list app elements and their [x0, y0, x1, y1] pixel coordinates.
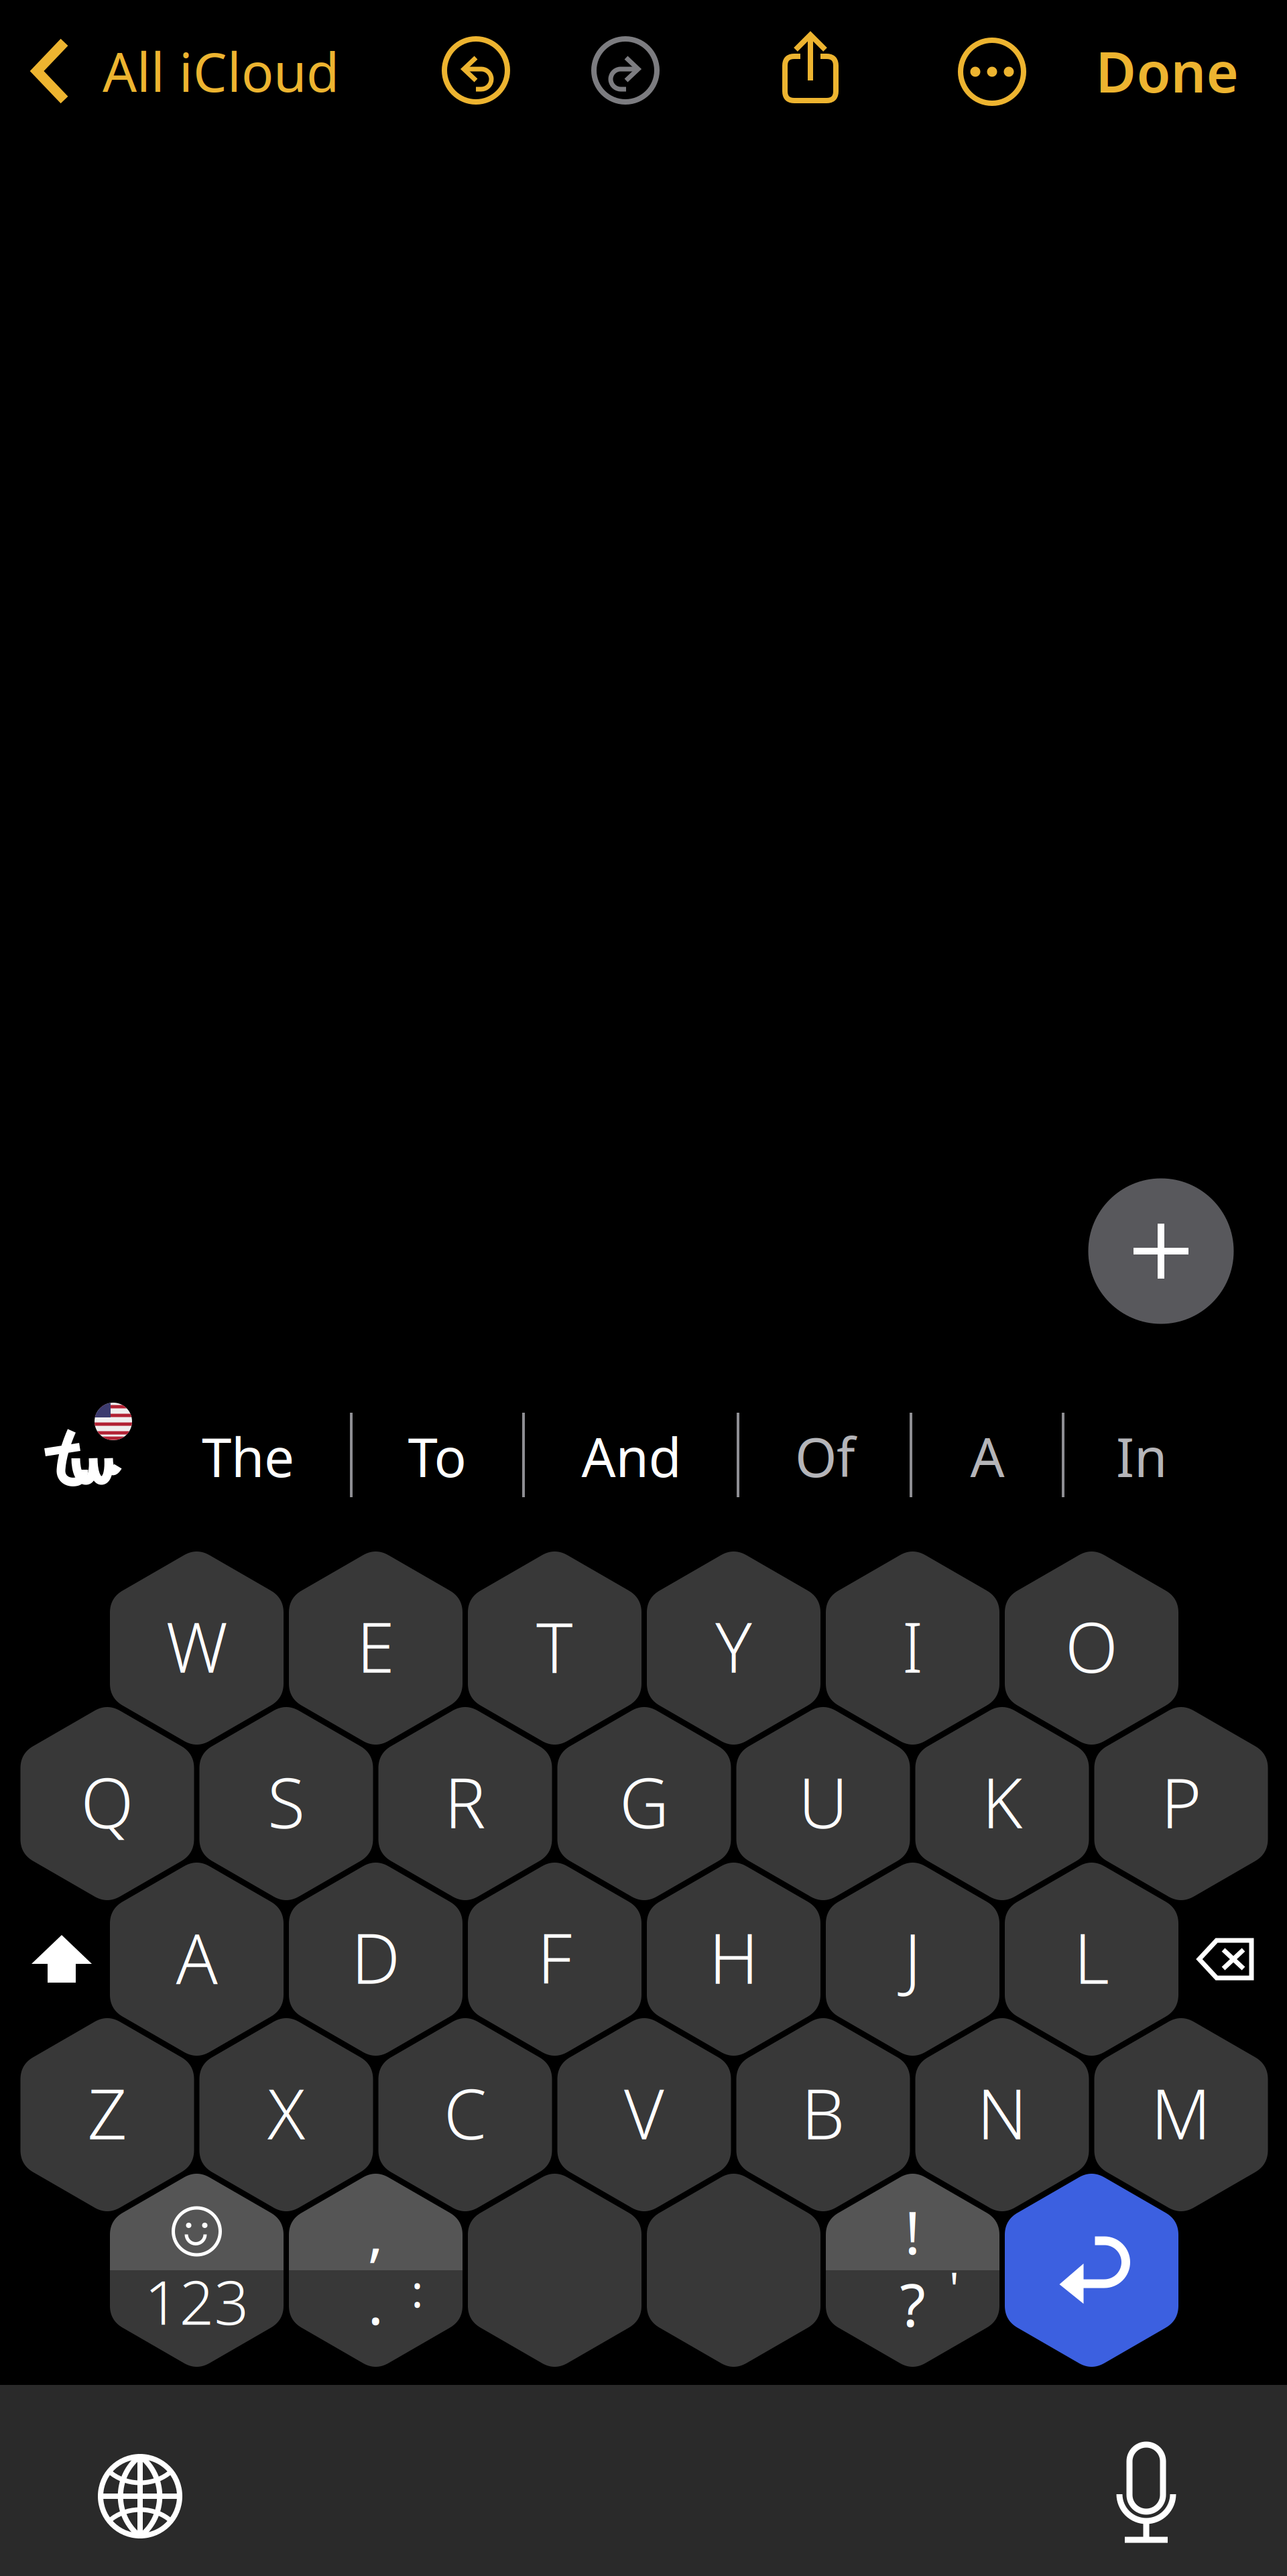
staticText: W — [166, 1600, 228, 1692]
button[interactable]: D — [0, 0, 1287, 2576]
button[interactable]: V — [0, 0, 1287, 2576]
button[interactable]: J — [0, 0, 1287, 2576]
staticText: E — [357, 1600, 395, 1692]
staticText: O — [1065, 1600, 1118, 1692]
staticText: Of — [795, 1421, 855, 1492]
button[interactable]: E — [0, 0, 1287, 2576]
staticText: H — [709, 1911, 758, 2003]
button[interactable]: Dictate — [1114, 2442, 1178, 2544]
staticText: To — [408, 1421, 466, 1492]
staticText: Q — [81, 1756, 134, 1847]
staticText: And — [581, 1421, 681, 1492]
button[interactable]: The — [187, 1407, 309, 1505]
button[interactable]: U — [0, 0, 1287, 2576]
button[interactable]: K — [0, 0, 1287, 2576]
button[interactable]: H — [0, 0, 1287, 2576]
button[interactable]: To — [393, 1407, 481, 1505]
staticText: X — [267, 2067, 305, 2158]
button[interactable]: P — [0, 0, 1287, 2576]
button[interactable]: Y — [0, 0, 1287, 2576]
button[interactable]: L — [0, 0, 1287, 2576]
staticText: A — [970, 1421, 1004, 1492]
staticText: L — [1074, 1911, 1109, 2003]
staticText: ' — [949, 2258, 959, 2317]
button[interactable]: A — [956, 1407, 1019, 1505]
staticText: I — [902, 1600, 923, 1692]
button[interactable]: N — [0, 0, 1287, 2576]
staticText: 123 — [144, 2261, 249, 2341]
button[interactable]: Undo — [442, 36, 510, 105]
button[interactable]: In — [1101, 1407, 1182, 1505]
button[interactable]: Numbers and emoji — [0, 0, 1287, 2576]
button[interactable]: Of — [780, 1407, 870, 1505]
button[interactable]: Delete — [1197, 1937, 1254, 1981]
staticText: All iCloud — [103, 35, 339, 107]
staticText: ! — [905, 2192, 921, 2271]
staticText: Done — [1096, 34, 1238, 108]
button[interactable]: All iCloud — [31, 21, 433, 121]
staticText: Z — [87, 2067, 127, 2158]
button[interactable]: A — [0, 0, 1287, 2576]
button[interactable]: O — [0, 0, 1287, 2576]
staticText: P — [1161, 1756, 1201, 1847]
button[interactable]: space — [0, 0, 1287, 2576]
button[interactable]: X — [0, 0, 1287, 2576]
button[interactable]: Done — [1080, 24, 1254, 118]
button[interactable]: Next keyboard — [98, 2454, 182, 2538]
staticText: : — [411, 2261, 423, 2320]
button[interactable]: I — [0, 0, 1287, 2576]
staticText: F — [537, 1911, 572, 2003]
staticText: Y — [715, 1600, 752, 1692]
button[interactable]: More — [958, 38, 1026, 106]
button[interactable]: Add attachment — [1088, 1178, 1234, 1324]
staticText: B — [801, 2067, 845, 2158]
button[interactable]: R — [0, 0, 1287, 2576]
staticText: U — [798, 1756, 848, 1847]
button[interactable]: space — [0, 0, 1287, 2576]
button[interactable]: T — [0, 0, 1287, 2576]
staticText: J — [904, 1911, 921, 2003]
staticText: The — [202, 1421, 294, 1492]
button[interactable]: Comma and period — [0, 0, 1287, 2576]
button[interactable]: Share — [775, 30, 846, 110]
staticText: C — [444, 2067, 487, 2158]
button[interactable]: Q — [0, 0, 1287, 2576]
button[interactable]: G — [0, 0, 1287, 2576]
button[interactable]: Exclamation and question mark — [0, 0, 1287, 2576]
staticText: D — [351, 1911, 400, 2003]
button[interactable]: Redo — [591, 36, 660, 105]
button[interactable]: Typewise keyboard settings — [20, 1405, 147, 1505]
button[interactable]: Return — [0, 0, 1287, 2576]
staticText: In — [1116, 1421, 1167, 1492]
button[interactable]: Shift — [30, 1933, 93, 1985]
staticText: T — [536, 1600, 573, 1692]
staticText: . — [368, 2263, 384, 2341]
button[interactable]: S — [0, 0, 1287, 2576]
button[interactable]: B — [0, 0, 1287, 2576]
staticText: R — [444, 1756, 486, 1847]
staticText: , — [368, 2194, 384, 2272]
staticText: G — [619, 1756, 669, 1847]
staticText: M — [1151, 2067, 1211, 2158]
staticText: K — [982, 1756, 1022, 1847]
staticText: ? — [900, 2265, 925, 2343]
button[interactable]: M — [0, 0, 1287, 2576]
staticText: N — [977, 2067, 1027, 2158]
button[interactable]: Z — [0, 0, 1287, 2576]
staticText: V — [624, 2067, 664, 2158]
button[interactable]: And — [567, 1407, 696, 1505]
staticText: S — [267, 1756, 305, 1847]
button[interactable]: C — [0, 0, 1287, 2576]
staticText: A — [176, 1911, 218, 2003]
button[interactable]: F — [0, 0, 1287, 2576]
button[interactable]: W — [0, 0, 1287, 2576]
